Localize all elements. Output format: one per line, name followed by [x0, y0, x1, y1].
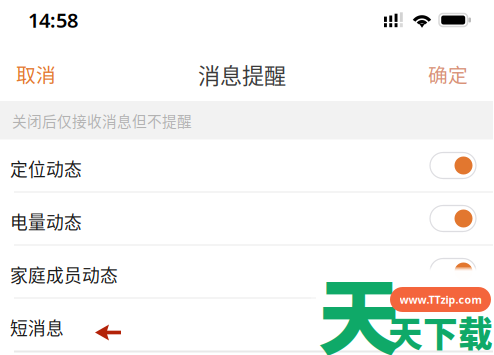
staticText: www.TTzip.com [399, 292, 481, 307]
button[interactable]: 确定 [406, 52, 493, 96]
staticText: 短消息 [10, 315, 64, 340]
staticText: 取消 [16, 60, 56, 88]
button[interactable]: 取消 [0, 52, 78, 96]
staticText: 确定 [428, 60, 468, 88]
staticText: 电量动态 [10, 209, 82, 234]
button[interactable]: 家庭成员动态 [0, 246, 493, 299]
staticText: 定位动态 [10, 156, 82, 181]
button[interactable]: 电量动态 [0, 193, 493, 246]
staticText: 关闭后仅接收消息但不提醒 [12, 110, 192, 131]
staticText: 消息提醒 [198, 58, 286, 90]
staticText: 家庭成员动态 [10, 262, 118, 287]
button[interactable]: 定位动态 [0, 140, 493, 193]
staticText: 14:58 [28, 7, 78, 33]
button[interactable]: 短消息 [0, 299, 493, 352]
staticText: 天下载 [388, 307, 493, 355]
staticText: 天 [318, 252, 401, 355]
